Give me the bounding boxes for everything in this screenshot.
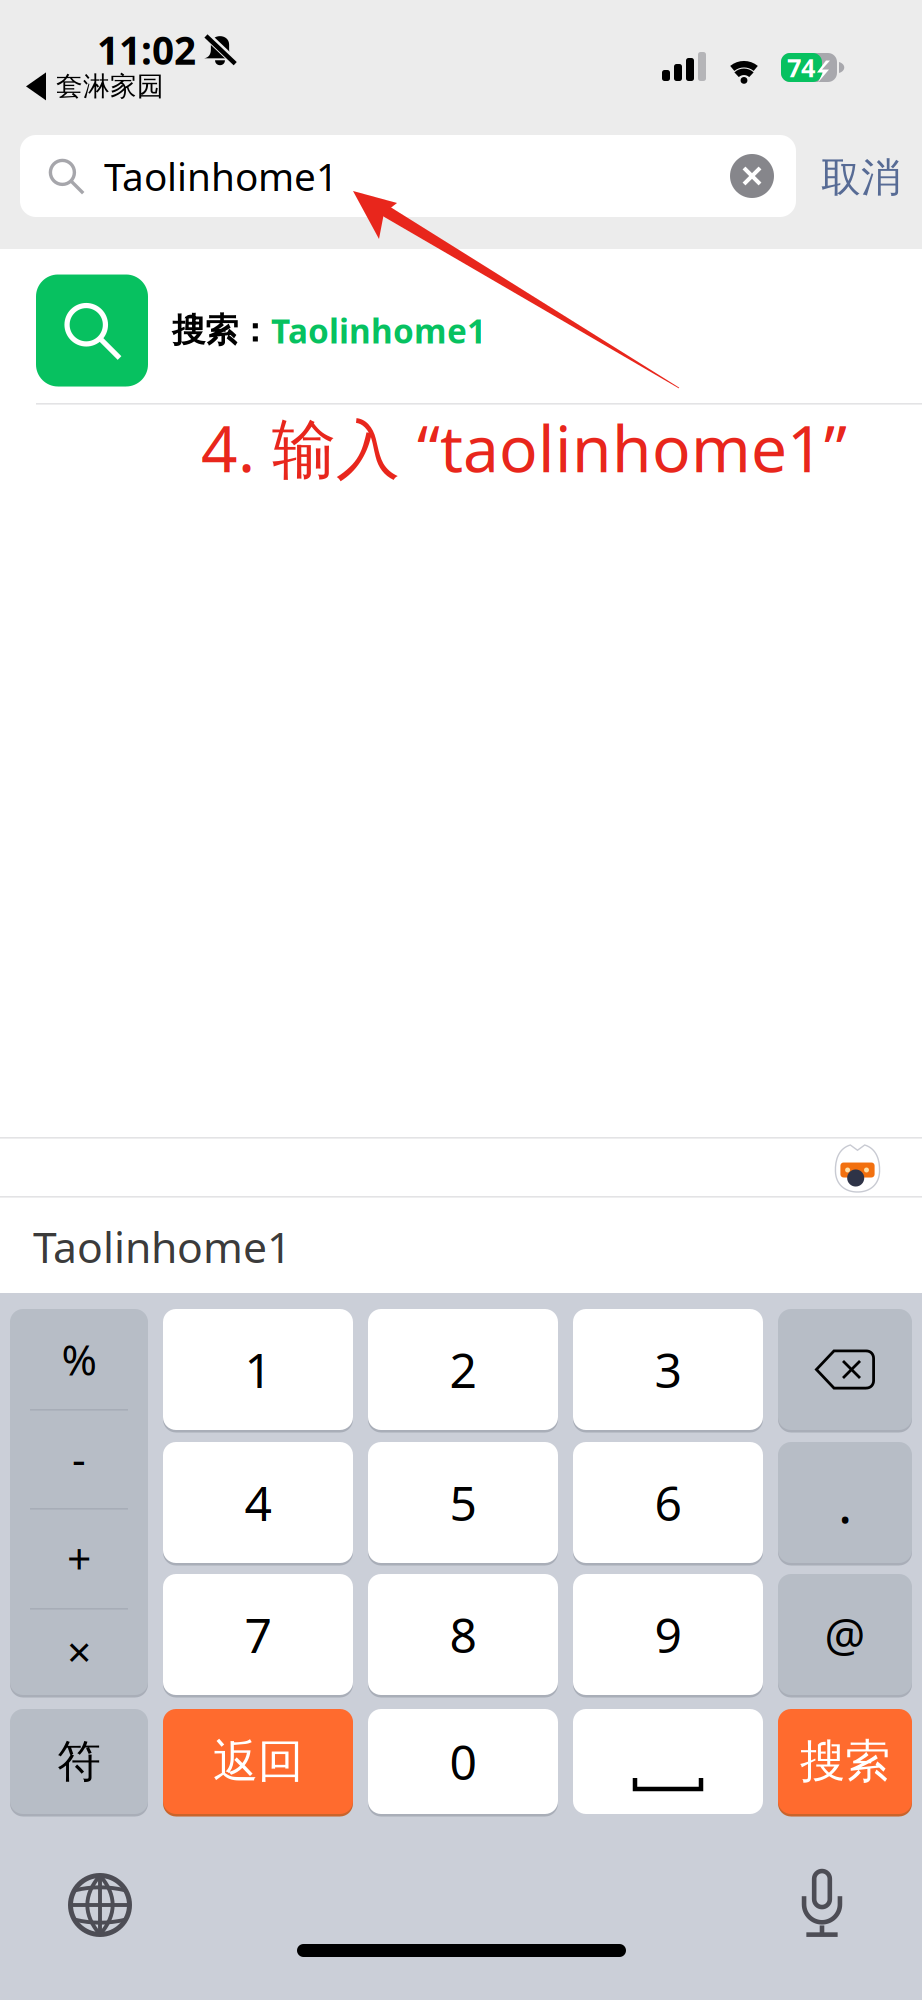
- button[interactable]: ×: [10, 1608, 148, 1694]
- button[interactable]: 取消: [821, 153, 901, 202]
- staticText: Taolinhome1: [33, 1218, 291, 1275]
- button[interactable]: 7: [163, 1574, 353, 1695]
- button[interactable]: 搜索: [778, 1709, 912, 1814]
- staticText: +: [67, 1530, 91, 1586]
- staticText: 74: [787, 51, 815, 84]
- button[interactable]: 6: [573, 1442, 763, 1563]
- button[interactable]: Switch keyboard: [68, 1873, 132, 1937]
- button[interactable]: 符: [10, 1709, 148, 1814]
- button[interactable]: 0: [368, 1709, 558, 1814]
- staticText: 4: [244, 1471, 271, 1534]
- button[interactable]: %: [10, 1309, 148, 1409]
- button[interactable]: +: [10, 1508, 148, 1608]
- staticText: 1: [244, 1338, 271, 1401]
- button[interactable]: 2: [368, 1309, 558, 1430]
- button[interactable]: 搜索：: [0, 253, 922, 408]
- staticText: 9: [654, 1603, 681, 1666]
- button[interactable]: .: [778, 1442, 912, 1563]
- button[interactable]: 5: [368, 1442, 558, 1563]
- button[interactable]: 3: [573, 1309, 763, 1430]
- button[interactable]: 1: [163, 1309, 353, 1430]
- button[interactable]: 4: [163, 1442, 353, 1563]
- staticText: 符: [57, 1734, 101, 1788]
- button[interactable]: Clear text: [730, 154, 774, 198]
- button[interactable]: Voice input: [799, 1869, 845, 1937]
- button[interactable]: Backspace: [778, 1309, 912, 1430]
- button[interactable]: 套淋家园: [26, 70, 164, 103]
- button[interactable]: Space: [573, 1709, 763, 1814]
- staticText: ×: [67, 1623, 91, 1679]
- button[interactable]: Taolinhome1: [33, 1218, 291, 1275]
- staticText: 搜索: [800, 1734, 890, 1789]
- staticText: 5: [449, 1471, 476, 1534]
- button[interactable]: -: [10, 1409, 148, 1508]
- button[interactable]: 返回: [163, 1709, 353, 1814]
- staticText: .: [838, 1467, 852, 1538]
- button[interactable]: @: [778, 1574, 912, 1695]
- staticText: 返回: [213, 1734, 303, 1789]
- staticText: 取消: [821, 153, 901, 202]
- staticText: 套淋家园: [56, 70, 164, 103]
- staticText: 8: [449, 1603, 476, 1666]
- button[interactable]: 8: [368, 1574, 558, 1695]
- staticText: 11:02: [97, 24, 196, 75]
- staticText: 搜索：: [172, 310, 271, 351]
- staticText: -: [72, 1430, 86, 1487]
- button[interactable]: 9: [573, 1574, 763, 1695]
- staticText: 0: [449, 1730, 476, 1793]
- staticText: 4. 输入 “taolinhome1”: [201, 405, 847, 490]
- staticText: 6: [654, 1471, 681, 1534]
- staticText: 7: [244, 1603, 271, 1666]
- staticText: 2: [449, 1338, 476, 1401]
- staticText: %: [61, 1331, 96, 1387]
- button[interactable]: Sogou input method: [835, 1142, 880, 1192]
- staticText: 3: [654, 1338, 681, 1401]
- staticText: Taolinhome1: [271, 308, 486, 353]
- staticText: Taolinhome1: [104, 150, 338, 202]
- staticText: @: [824, 1604, 865, 1665]
